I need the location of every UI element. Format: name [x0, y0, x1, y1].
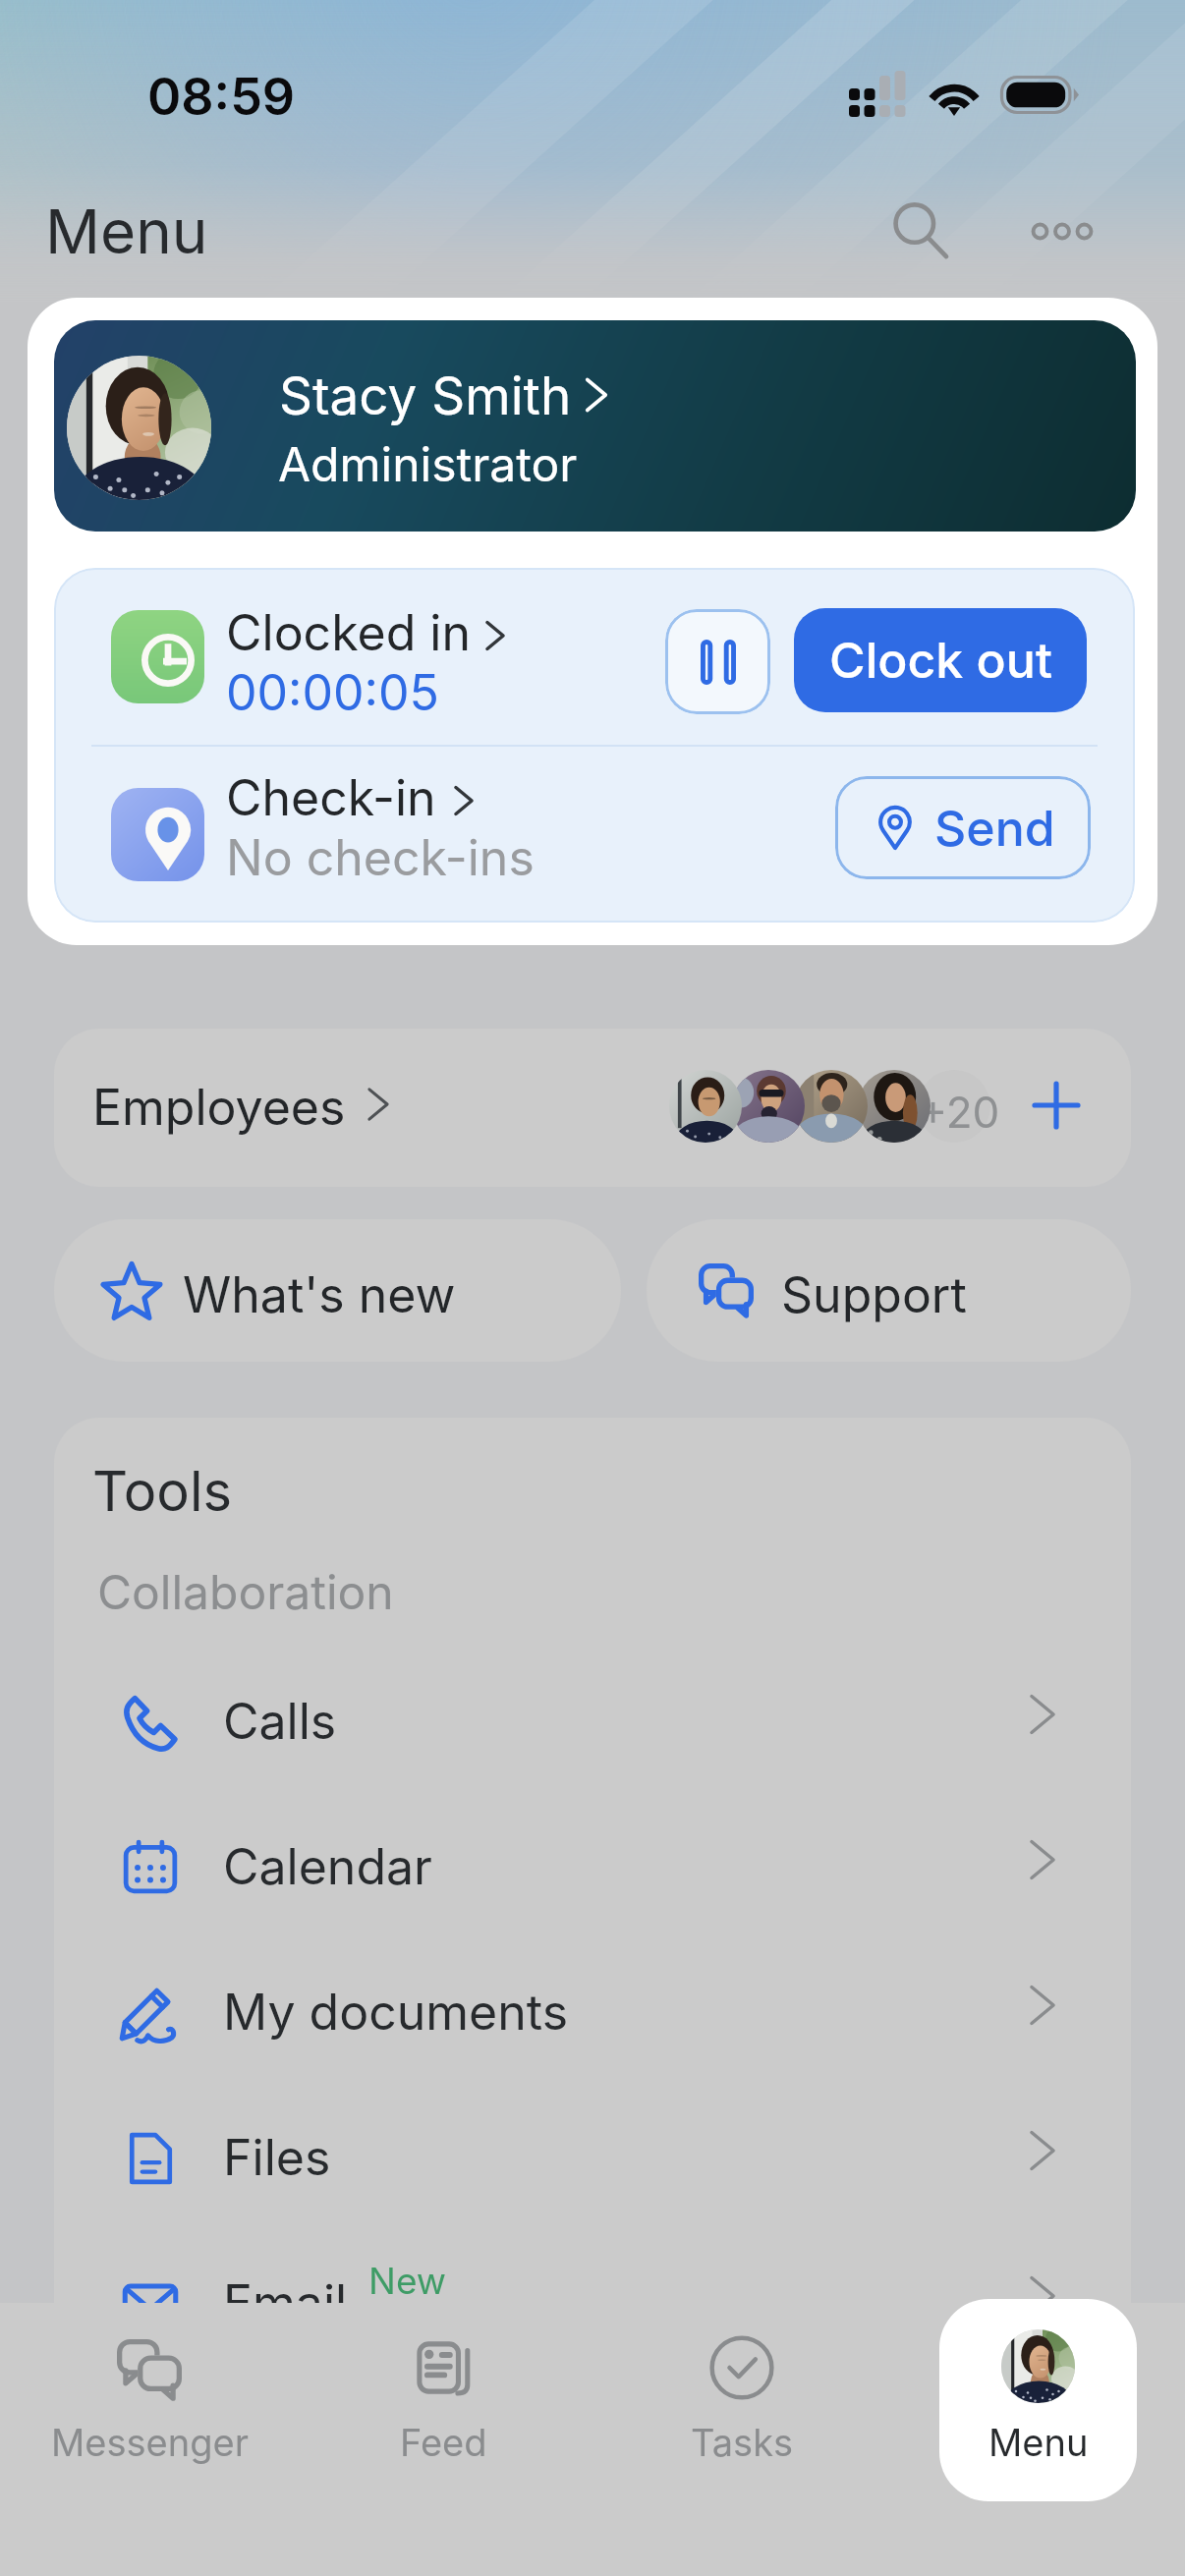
staticText: 00:00:05 [226, 663, 439, 722]
staticText: Send [934, 799, 1055, 858]
button[interactable]: Stacy Smith [54, 320, 1136, 532]
staticText: Calendar [223, 1837, 432, 1896]
staticText: What's new [183, 1265, 456, 1324]
button[interactable]: Support [647, 1219, 1131, 1362]
button[interactable]: Email [54, 2220, 1131, 2366]
button[interactable]: Calls [54, 1639, 1131, 1784]
staticText: No check-ins [226, 828, 535, 887]
staticText: +20 [919, 1086, 1000, 1138]
button[interactable]: Messenger [41, 2305, 257, 2501]
staticText: Clocked in [226, 603, 471, 662]
staticText: Feed [400, 2420, 487, 2465]
staticText: My documents [223, 1983, 569, 2042]
staticText: Administrator [278, 435, 578, 492]
button[interactable]: Feed [335, 2305, 551, 2501]
staticText: Clock out [829, 631, 1052, 690]
staticText: Messenger [51, 2420, 249, 2465]
staticText: Email [223, 2273, 348, 2332]
staticText: Employees [92, 1078, 346, 1137]
button[interactable]: More options [1008, 177, 1116, 285]
button[interactable]: What's new [54, 1219, 621, 1362]
button[interactable]: My documents [54, 1930, 1131, 2075]
button[interactable]: Employees [54, 1029, 1131, 1187]
staticText: Support [781, 1265, 967, 1324]
staticText: Files [223, 2128, 331, 2187]
button[interactable]: Pause [665, 609, 770, 714]
staticText: Calls [223, 1692, 337, 1751]
button[interactable]: Send [835, 776, 1091, 879]
button[interactable]: Files [54, 2075, 1131, 2220]
staticText: 08:59 [147, 66, 296, 128]
staticText: Menu [45, 195, 208, 268]
button[interactable]: Search [867, 177, 975, 285]
button[interactable]: Clock out [794, 608, 1087, 712]
staticText: New [368, 2259, 447, 2303]
staticText: Check-in [226, 768, 436, 827]
staticText: Tasks [691, 2420, 794, 2465]
button[interactable] [54, 747, 1135, 923]
button[interactable]: Calendar [54, 1784, 1131, 1930]
staticText: Collaboration [97, 1563, 394, 1620]
staticText: Tools [92, 1458, 233, 1525]
staticText: Menu [988, 2420, 1089, 2465]
staticText: Stacy Smith [279, 364, 572, 427]
button[interactable]: Add employee [1012, 1061, 1100, 1149]
button[interactable] [54, 568, 1135, 745]
button[interactable]: Menu [939, 2299, 1137, 2501]
button[interactable]: Tasks [634, 2305, 850, 2501]
